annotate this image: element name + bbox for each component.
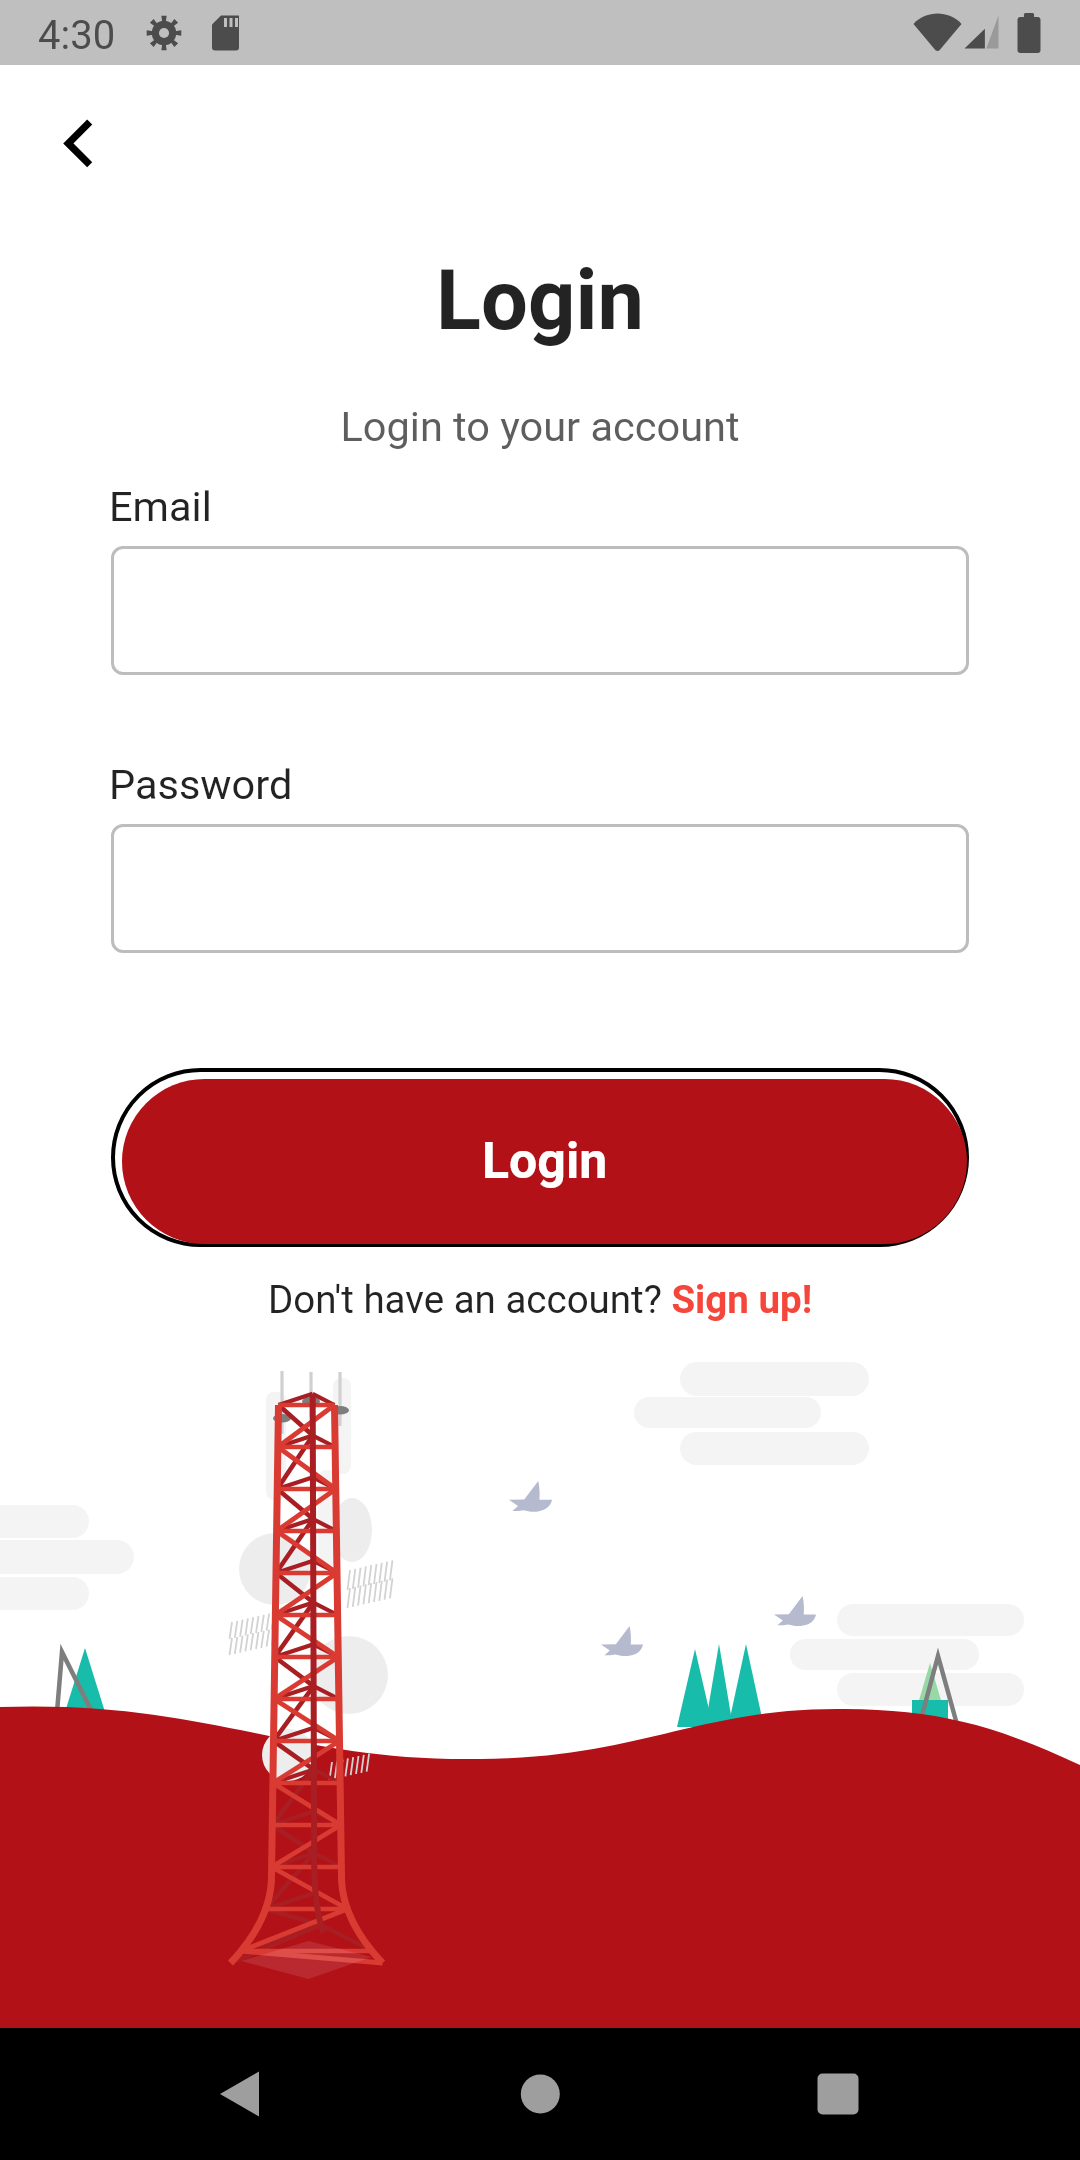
button[interactable]: Back	[180, 2028, 300, 2160]
button[interactable]: Back	[20, 78, 132, 190]
button[interactable]	[111, 824, 969, 953]
staticText: 4:30	[38, 12, 116, 59]
button[interactable]: Home	[480, 2028, 600, 2160]
staticText: Email	[109, 482, 212, 531]
button[interactable]: Login	[111, 1068, 969, 1247]
staticText: Login	[482, 1132, 608, 1191]
staticText: Don't have an account? Sign up!	[268, 1277, 813, 1322]
button[interactable]: Don't have an account? Sign up!	[268, 1277, 813, 1322]
button[interactable]: Recent apps	[780, 2028, 900, 2160]
staticText: Login to your account	[0, 402, 1080, 451]
button[interactable]	[111, 546, 969, 675]
staticText: Login	[0, 252, 1080, 349]
staticText: Password	[109, 760, 293, 809]
